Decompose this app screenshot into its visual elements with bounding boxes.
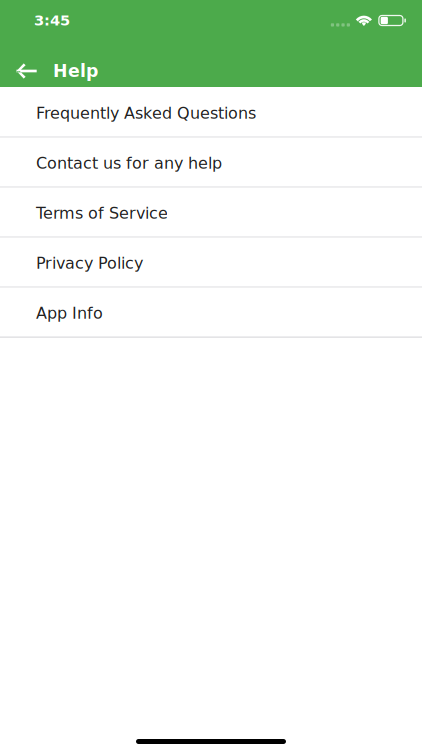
- staticText: Privacy Policy: [36, 254, 143, 272]
- staticText: Terms of Service: [36, 204, 168, 222]
- button[interactable]: Terms of Service: [0, 188, 422, 238]
- button[interactable]: Privacy Policy: [0, 238, 422, 288]
- staticText: 3:45: [34, 12, 70, 29]
- button[interactable]: Contact us for any help: [0, 138, 422, 188]
- staticText: App Info: [36, 304, 103, 322]
- button[interactable]: App Info: [0, 288, 422, 338]
- staticText: Contact us for any help: [36, 154, 222, 172]
- staticText: Help: [53, 61, 98, 81]
- button[interactable]: Frequently Asked Questions: [0, 88, 422, 138]
- button[interactable]: Back: [0, 48, 53, 93]
- staticText: Frequently Asked Questions: [36, 104, 256, 122]
